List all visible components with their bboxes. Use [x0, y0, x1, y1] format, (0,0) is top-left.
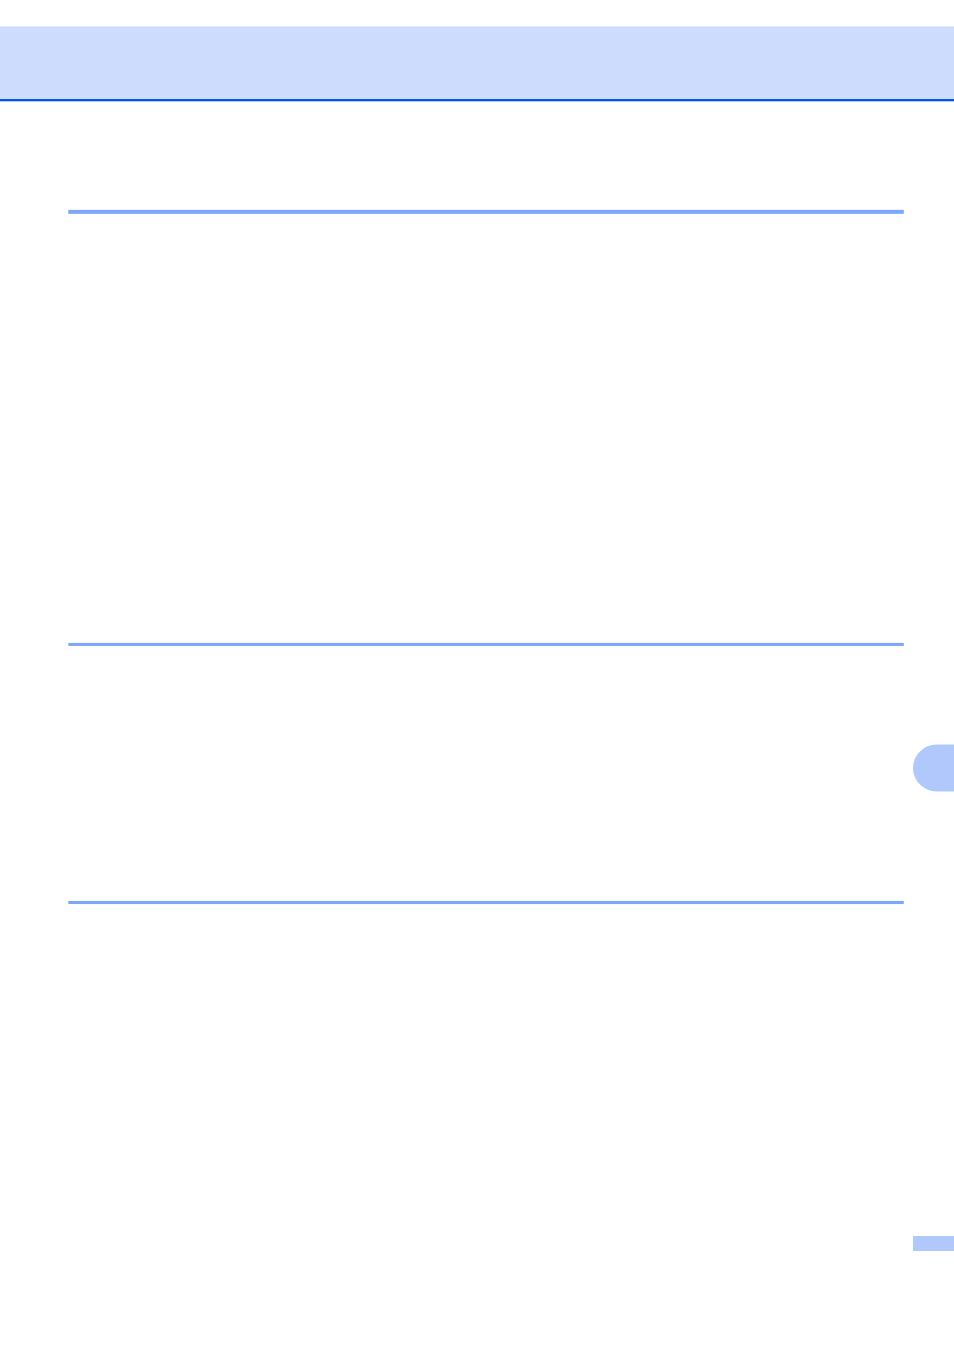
- button[interactable]: Chapter tab: [913, 745, 954, 792]
